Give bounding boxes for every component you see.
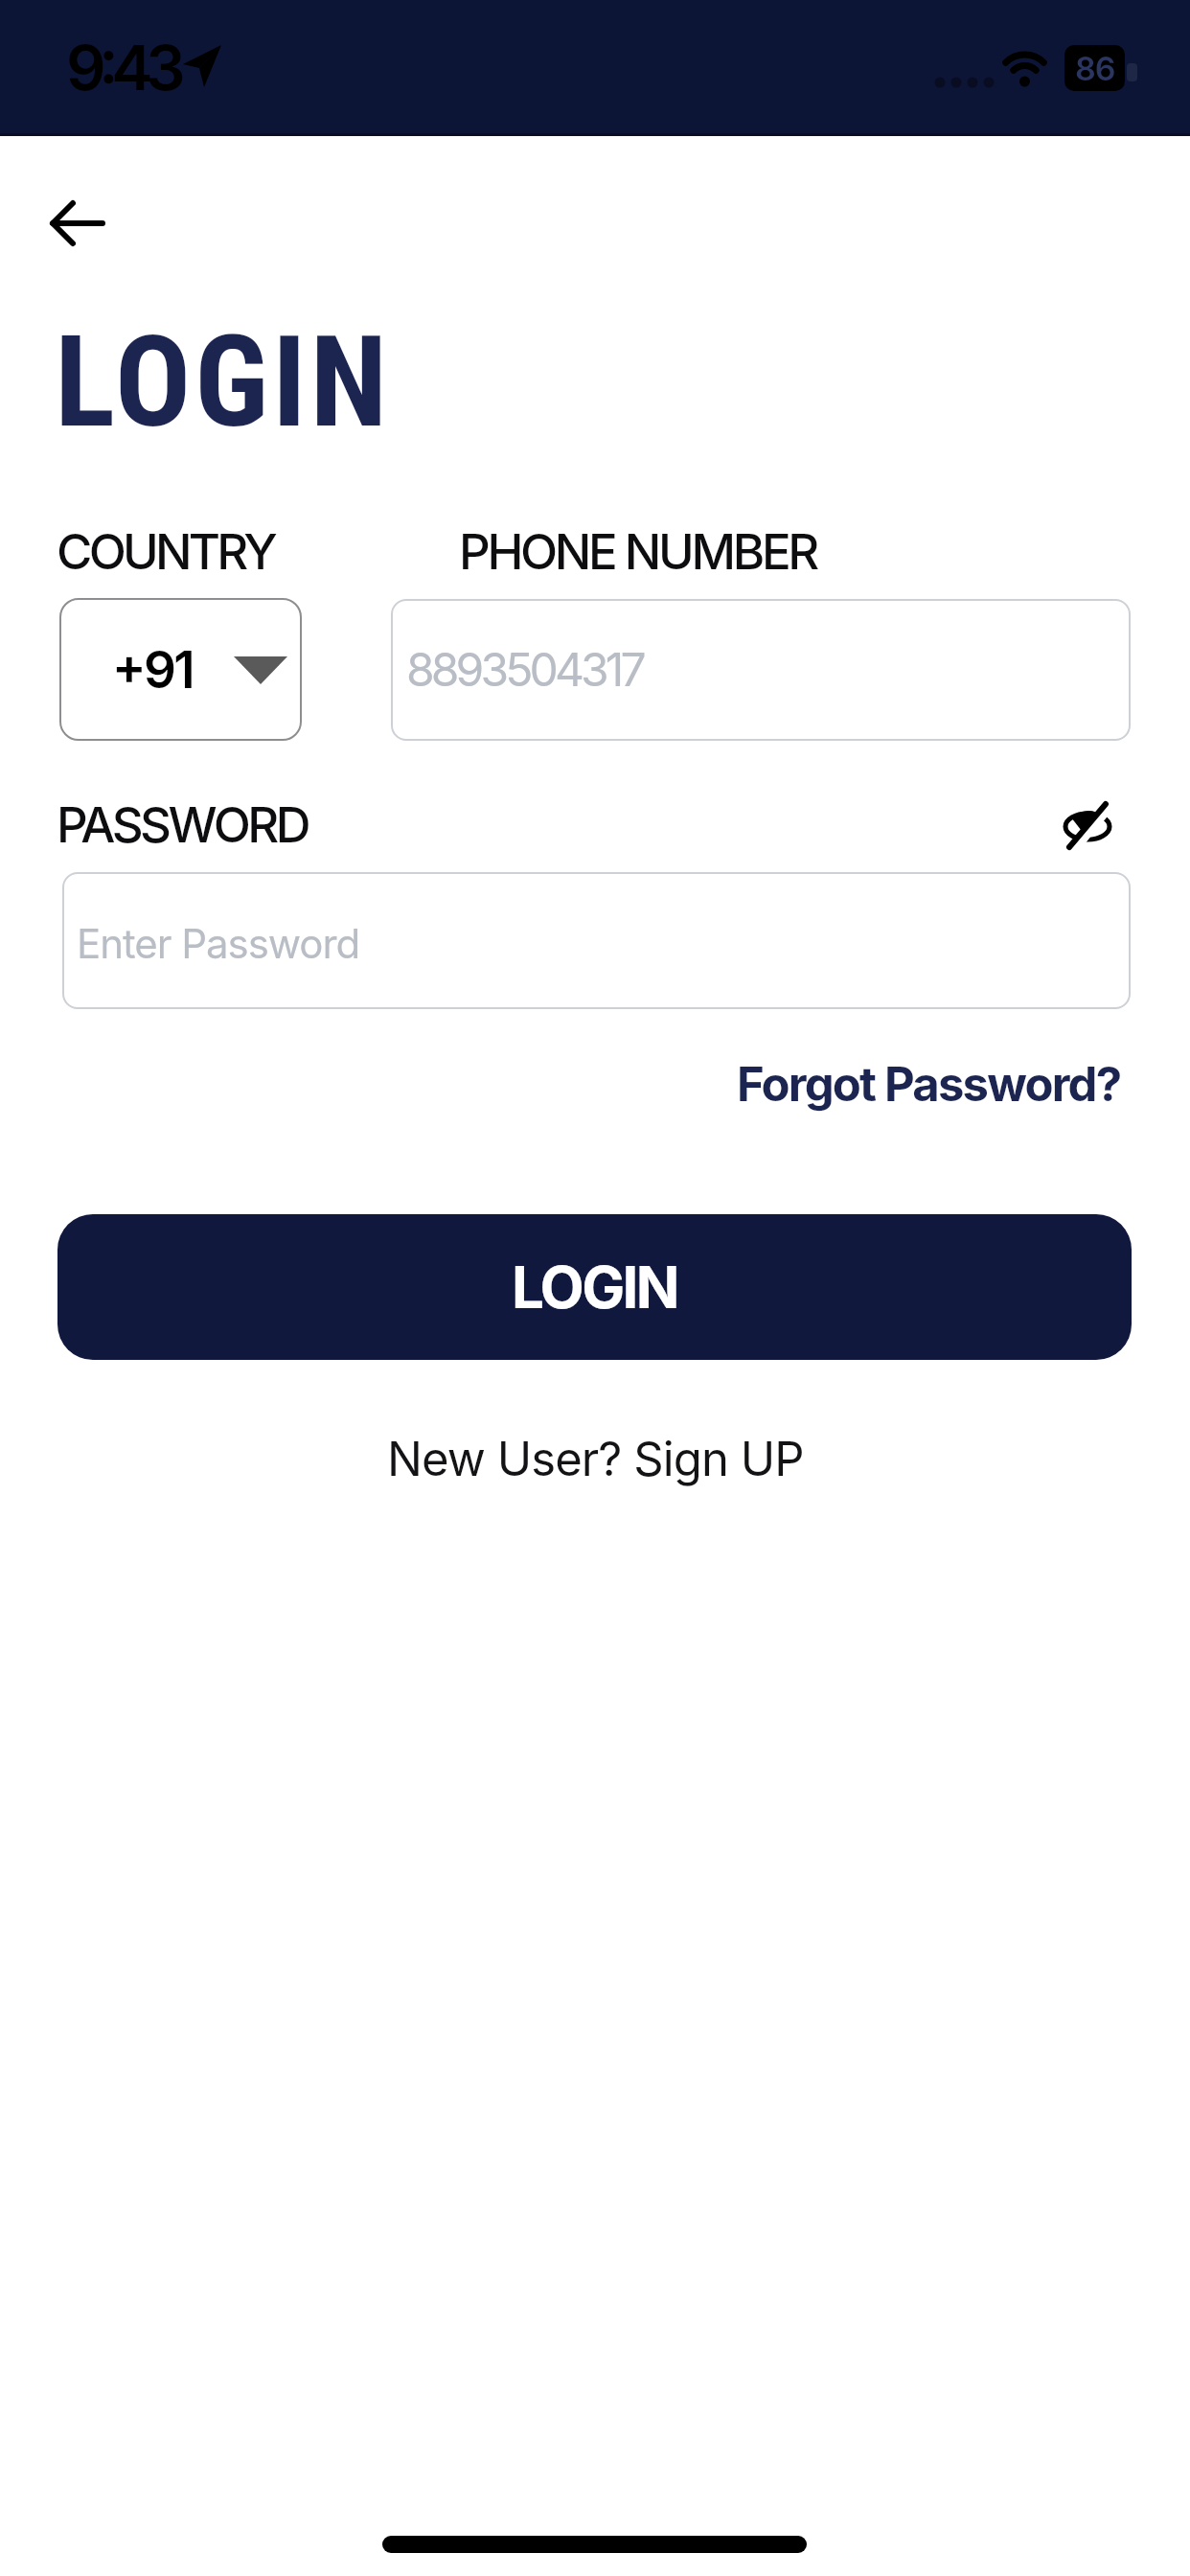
- staticText: COUNTRY: [57, 522, 274, 582]
- button[interactable]: 8893504317: [391, 599, 1131, 741]
- button[interactable]: [1064, 803, 1113, 849]
- staticText: 9:43: [66, 30, 179, 105]
- button[interactable]: Enter Password: [62, 872, 1131, 1009]
- staticText: LOGIN: [55, 309, 391, 457]
- button[interactable]: [50, 200, 111, 246]
- button[interactable]: LOGIN: [57, 1214, 1132, 1360]
- staticText: LOGIN: [512, 1253, 677, 1322]
- staticText: PASSWORD: [57, 795, 309, 855]
- staticText: 86: [1075, 49, 1115, 88]
- staticText: +91: [112, 639, 194, 701]
- staticText: Enter Password: [77, 919, 360, 968]
- staticText: 8893504317: [406, 641, 643, 697]
- button[interactable]: +91: [59, 598, 302, 741]
- staticText: PHONE NUMBER: [459, 522, 817, 582]
- button[interactable]: New User? Sign UP: [387, 1431, 804, 1487]
- button[interactable]: Forgot Password?: [737, 1056, 1121, 1113]
